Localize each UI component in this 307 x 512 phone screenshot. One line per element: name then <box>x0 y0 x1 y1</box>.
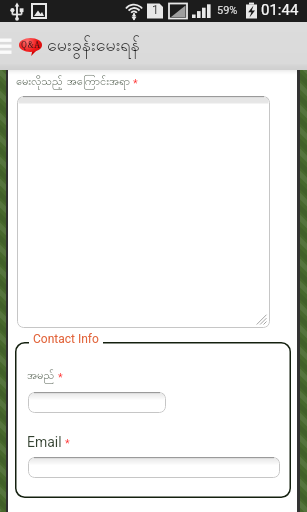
button[interactable]: Question text field <box>17 96 270 328</box>
staticText: * <box>58 371 63 384</box>
button[interactable]: Open navigation menu <box>0 35 14 57</box>
staticText: 59% <box>217 4 238 17</box>
staticText: Email <box>27 434 62 450</box>
staticText: အမည် <box>27 368 55 384</box>
staticText: * <box>65 437 70 450</box>
staticText: Q&A <box>21 39 41 50</box>
button[interactable]: Name field <box>28 392 166 413</box>
staticText: * <box>133 77 138 90</box>
staticText: မေးလိုသည့် အကြောင်းအရာ <box>16 74 130 90</box>
staticText: မေးခွန်းမေးရန် <box>47 33 140 60</box>
staticText: Contact Info <box>33 332 99 346</box>
staticText: 01:44 <box>261 1 299 19</box>
button[interactable]: Email field <box>28 457 280 478</box>
staticText: 1 <box>152 3 159 17</box>
